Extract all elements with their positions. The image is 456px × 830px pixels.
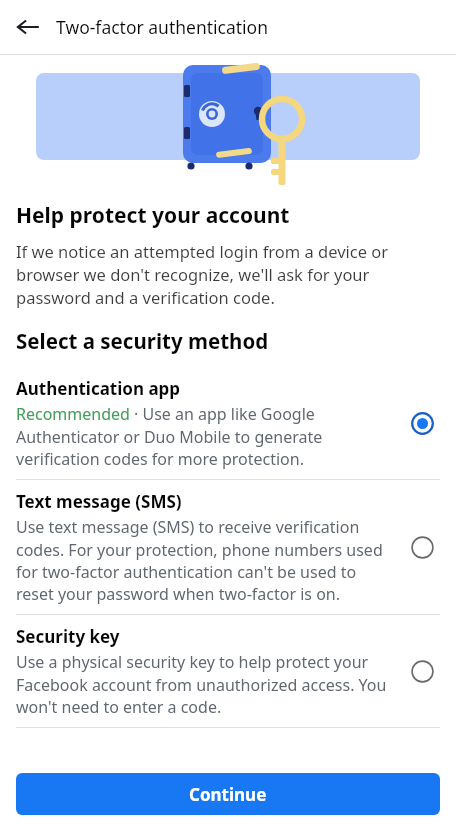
button[interactable]: Security key [0,615,456,727]
staticText: Use text message (SMS) to receive verifi… [16,516,392,604]
staticText: If we notice an attempted login from a d… [16,240,440,309]
staticText: Use a physical security key to help prot… [16,651,392,717]
staticText: Help protect your account [16,201,290,230]
button[interactable]: Text message (SMS) [0,480,456,614]
staticText: Authentication app [16,377,181,400]
button[interactable]: Back [6,5,50,49]
staticText: Continue [189,783,267,806]
staticText: Text message (SMS) [16,490,182,513]
button[interactable]: Continue [16,773,440,815]
button[interactable]: Authentication app [0,367,456,479]
staticText: Recommended · Use an app like Google Aut… [16,403,392,469]
staticText: Select a security method [16,327,269,355]
staticText: Two-factor authentication [56,15,269,39]
staticText: Security key [16,625,120,648]
